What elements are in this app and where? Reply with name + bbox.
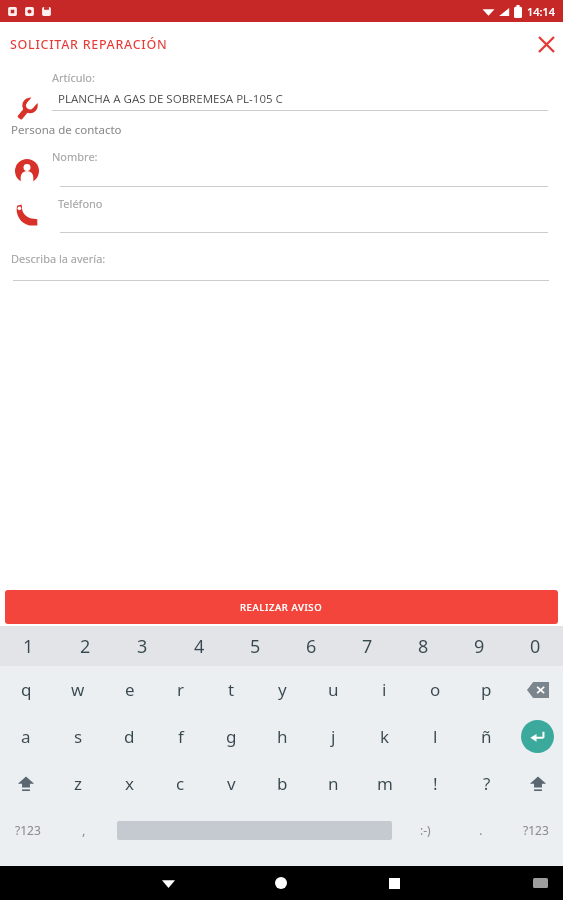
button[interactable]: 8 — [395, 626, 451, 666]
button[interactable]: Mayúsculas — [0, 760, 52, 807]
button[interactable]: Cerrar — [530, 28, 563, 61]
button[interactable]: 5 — [227, 626, 283, 666]
button[interactable]: f — [155, 713, 206, 760]
button[interactable]: :-) — [398, 807, 453, 853]
staticText: n — [328, 772, 339, 795]
button[interactable]: 6 — [283, 626, 339, 666]
staticText: k — [380, 725, 390, 748]
button[interactable]: v — [206, 760, 257, 807]
button[interactable]: g — [206, 713, 257, 760]
button[interactable]: ?123 — [0, 807, 56, 853]
staticText: a — [21, 725, 31, 748]
button[interactable]: 9 — [451, 626, 507, 666]
staticText: REALIZAR AVISO — [240, 601, 323, 614]
staticText: :-) — [420, 822, 431, 838]
staticText: u — [328, 678, 339, 701]
button[interactable]: c — [155, 760, 206, 807]
button[interactable]: m — [359, 760, 410, 807]
staticText: ?123 — [523, 822, 549, 838]
staticText: c — [176, 772, 185, 795]
button[interactable]: Atrás — [151, 866, 185, 900]
staticText: d — [124, 725, 135, 748]
button[interactable]: Intro — [512, 713, 563, 760]
button[interactable]: h — [257, 713, 308, 760]
staticText: 7 — [362, 634, 373, 659]
button[interactable]: e — [104, 666, 155, 713]
button[interactable]: k — [359, 713, 410, 760]
button[interactable]: y — [257, 666, 308, 713]
button[interactable]: REALIZAR AVISO — [5, 590, 558, 624]
staticText: g — [226, 725, 237, 748]
button[interactable]: u — [308, 666, 359, 713]
button[interactable]: , — [56, 807, 111, 853]
button[interactable]: 1 — [0, 626, 57, 666]
button[interactable]: j — [308, 713, 359, 760]
staticText: t — [228, 678, 235, 701]
staticText: z — [74, 772, 82, 795]
button[interactable]: ñ — [461, 713, 512, 760]
staticText: 1 — [23, 634, 34, 659]
button[interactable]: r — [155, 666, 206, 713]
button[interactable]: Mayúsculas — [512, 760, 563, 807]
staticText: q — [21, 678, 32, 701]
button[interactable]: ! — [410, 760, 461, 807]
button[interactable]: Espacio — [111, 807, 398, 853]
staticText: 2 — [80, 634, 91, 659]
staticText: 6 — [306, 634, 317, 659]
staticText: o — [430, 678, 441, 701]
button[interactable]: n — [308, 760, 359, 807]
staticText: Artículo: — [52, 70, 95, 85]
staticText: PLANCHA A GAS DE SOBREMESA PL-105 C — [58, 91, 283, 107]
button[interactable]: q — [0, 666, 52, 713]
staticText: w — [71, 678, 85, 701]
staticText: e — [125, 678, 135, 701]
button[interactable]: Borrar — [512, 666, 563, 713]
button[interactable]: t — [206, 666, 257, 713]
button[interactable]: d — [104, 713, 155, 760]
button[interactable]: p — [461, 666, 512, 713]
button[interactable]: ?123 — [508, 807, 563, 853]
staticText: ? — [483, 772, 491, 795]
staticText: 4 — [194, 634, 205, 659]
staticText: 14:14 — [527, 4, 556, 19]
button[interactable]: l — [410, 713, 461, 760]
staticText: x — [125, 772, 134, 795]
button[interactable]: s — [52, 713, 104, 760]
button[interactable]: z — [52, 760, 104, 807]
staticText: Teléfono — [58, 196, 103, 211]
staticText: Nombre: — [52, 149, 98, 164]
button[interactable]: b — [257, 760, 308, 807]
button[interactable]: 7 — [339, 626, 395, 666]
button[interactable]: SOLICITAR REPARACIÓN — [0, 22, 563, 66]
button[interactable]: o — [410, 666, 461, 713]
staticText: 9 — [474, 634, 485, 659]
button[interactable]: 2 — [57, 626, 114, 666]
staticText: r — [177, 678, 185, 701]
button[interactable]: x — [104, 760, 155, 807]
staticText: ! — [433, 772, 438, 795]
button[interactable]: Inicio — [264, 866, 298, 900]
staticText: y — [278, 678, 287, 701]
button[interactable]: 4 — [171, 626, 227, 666]
button[interactable]: Recientes — [377, 866, 411, 900]
button[interactable]: i — [359, 666, 410, 713]
button[interactable]: ? — [461, 760, 512, 807]
staticText: 3 — [137, 634, 148, 659]
staticText: b — [277, 772, 288, 795]
staticText: ?123 — [15, 822, 41, 838]
staticText: 8 — [418, 634, 429, 659]
button[interactable]: a — [0, 713, 52, 760]
button[interactable]: 3 — [114, 626, 171, 666]
button[interactable]: 0 — [507, 626, 563, 666]
staticText: Persona de contacto — [11, 122, 122, 138]
staticText: i — [382, 678, 387, 701]
staticText: p — [481, 678, 492, 701]
button[interactable]: w — [52, 666, 104, 713]
staticText: 5 — [250, 634, 261, 659]
button[interactable]: Cambiar teclado — [523, 866, 557, 900]
staticText: , — [82, 821, 86, 839]
staticText: SOLICITAR REPARACIÓN — [10, 36, 168, 53]
staticText: 0 — [530, 634, 541, 659]
staticText: ñ — [481, 725, 492, 748]
